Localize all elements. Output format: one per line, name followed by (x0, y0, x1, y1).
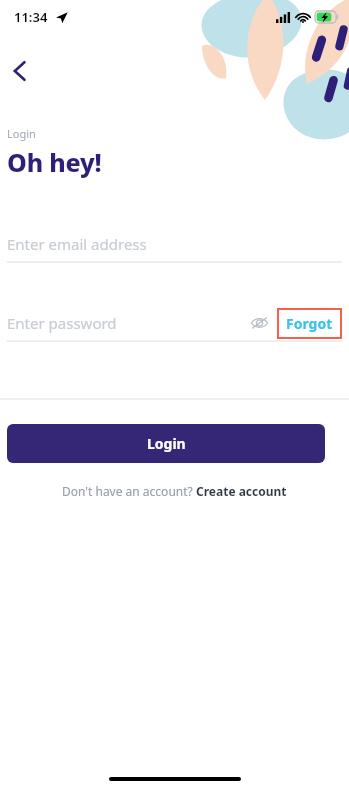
button[interactable]: Enter email address (7, 227, 342, 263)
button[interactable]: Login (7, 424, 325, 463)
staticText: Enter email address (7, 234, 147, 254)
button[interactable]: Back (2, 54, 36, 88)
staticText: Don't have an account? (62, 483, 196, 499)
button[interactable]: Enter password (7, 306, 246, 340)
button[interactable]: Don't have an account? (0, 483, 349, 499)
staticText: 11:34 (14, 8, 48, 26)
staticText: Oh hey! (7, 145, 102, 179)
staticText: Create account (196, 483, 287, 499)
staticText: Forgot (286, 314, 333, 333)
button[interactable]: Show password (246, 310, 272, 336)
staticText: Login (147, 434, 186, 453)
button[interactable]: Forgot (277, 308, 342, 339)
staticText: Login (7, 126, 36, 141)
staticText: Enter password (7, 313, 117, 333)
